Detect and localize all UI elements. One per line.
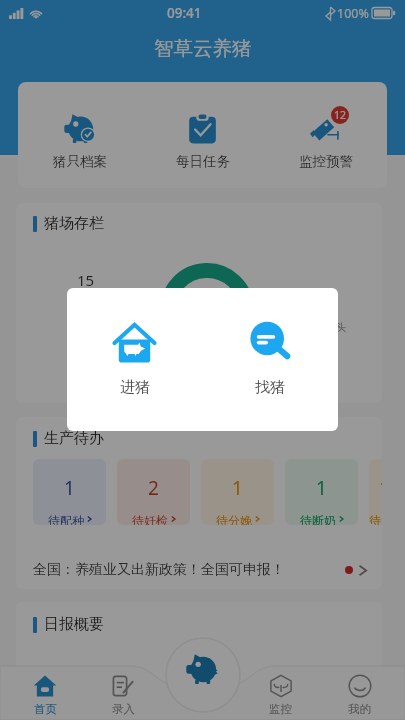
- staticText: 15: [77, 270, 95, 290]
- staticText: 智草云养猪: [154, 36, 252, 61]
- button[interactable]: 1: [33, 459, 106, 525]
- staticText: 找猪: [255, 378, 285, 397]
- staticText: 09:41: [167, 4, 202, 22]
- button[interactable]: 进猪: [67, 288, 202, 397]
- button[interactable]: 1: [285, 459, 358, 525]
- staticText: 监控预警: [299, 153, 353, 170]
- button[interactable]: 找猪: [202, 288, 338, 397]
- staticText: 录入: [112, 702, 135, 716]
- button[interactable]: 首页: [6, 666, 84, 716]
- staticText: 待出栏: [369, 513, 382, 525]
- button[interactable]: 全国：养殖业又出新政策！全国可申报！: [33, 553, 368, 587]
- button[interactable]: 监控: [241, 666, 320, 716]
- staticText: 待分娩: [216, 513, 252, 525]
- staticText: 2: [148, 475, 159, 501]
- staticText: 1: [64, 475, 75, 501]
- staticText: 头: [336, 321, 346, 334]
- staticText: 进猪: [120, 378, 150, 397]
- staticText: 1: [316, 475, 327, 501]
- staticText: 待断奶: [300, 513, 336, 525]
- staticText: 100%: [337, 5, 369, 22]
- staticText: 猪场存栏: [44, 214, 104, 233]
- button[interactable]: 2: [117, 459, 190, 525]
- staticText: 猪只档案: [53, 153, 107, 170]
- staticText: 生产待办: [44, 429, 104, 448]
- button[interactable]: 记一笔: [166, 638, 240, 712]
- button[interactable]: 猪只档案: [18, 82, 141, 170]
- staticText: 每日任务: [176, 153, 230, 170]
- button[interactable]: 12: [264, 82, 387, 170]
- staticText: 日报概要: [44, 615, 104, 634]
- staticText: 我的: [348, 702, 371, 716]
- button[interactable]: 1: [369, 459, 382, 525]
- staticText: 全国：养殖业又出新政策！全国可申报！: [33, 561, 285, 579]
- button[interactable]: 录入: [84, 666, 162, 716]
- button[interactable]: 1: [201, 459, 274, 525]
- staticText: 1: [379, 475, 382, 501]
- staticText: 1: [232, 475, 243, 501]
- staticText: 待妊检: [132, 513, 168, 525]
- button[interactable]: 我的: [320, 666, 399, 716]
- staticText: 首页: [34, 702, 57, 716]
- button[interactable]: 每日任务: [141, 82, 264, 170]
- staticText: 待配种: [48, 513, 84, 525]
- staticText: 监控: [269, 702, 292, 716]
- staticText: 12: [334, 108, 347, 122]
